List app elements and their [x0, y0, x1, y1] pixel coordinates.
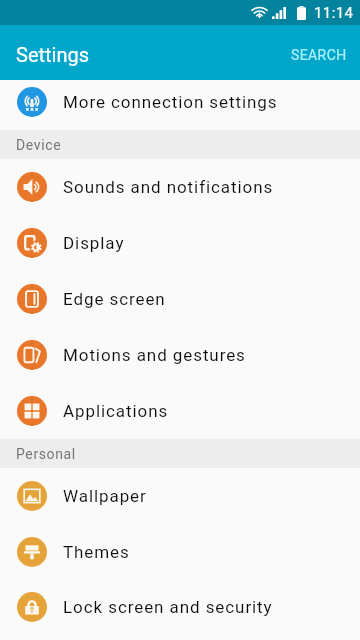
staticText: 11:14 [314, 4, 354, 22]
staticText: Edge screen [63, 289, 166, 309]
button[interactable]: SEARCH [278, 28, 360, 77]
staticText: Applications [63, 401, 169, 421]
button[interactable]: Applications [0, 383, 360, 439]
staticText: More connection settings [63, 92, 278, 112]
button[interactable]: Motions and gestures [0, 327, 360, 383]
staticText: Personal [16, 446, 76, 462]
staticText: Sounds and notifications [63, 177, 274, 197]
button[interactable]: Sounds and notifications [0, 159, 360, 215]
staticText: SEARCH [291, 47, 347, 63]
staticText: Wallpaper [63, 486, 147, 506]
staticText: Settings [16, 43, 90, 66]
staticText: Motions and gestures [63, 345, 246, 365]
other: Wi-Fi signal [252, 6, 267, 20]
button[interactable]: Lock screen and security [0, 580, 360, 634]
staticText: Themes [63, 542, 130, 562]
other: Mobile signal [272, 7, 286, 19]
staticText: Lock screen and security [63, 597, 273, 617]
button[interactable]: More connection settings [0, 80, 360, 130]
button[interactable]: Themes [0, 524, 360, 580]
button[interactable]: Display [0, 215, 360, 271]
other: Battery [297, 6, 306, 20]
button[interactable]: Edge screen [0, 271, 360, 327]
staticText: Device [16, 137, 62, 153]
button[interactable]: Wallpaper [0, 468, 360, 524]
staticText: Display [63, 233, 125, 253]
